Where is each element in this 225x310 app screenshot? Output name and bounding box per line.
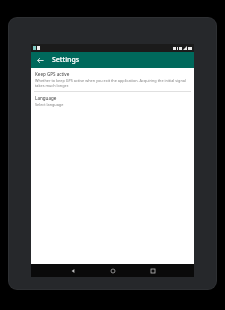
button[interactable]: Home [100,264,126,277]
button[interactable]: Navigate up [35,55,46,66]
button[interactable]: Recent apps [140,264,166,277]
staticText: Select language [35,102,64,107]
staticText: Whether to keep GPS active when you exit… [35,78,190,88]
staticText: Keep GPS active [35,71,70,77]
button[interactable]: Language [31,92,194,110]
button[interactable]: Back [60,264,86,277]
staticText: Language [35,95,57,101]
staticText: Settings [52,55,80,65]
button[interactable]: Keep GPS active [31,68,194,91]
